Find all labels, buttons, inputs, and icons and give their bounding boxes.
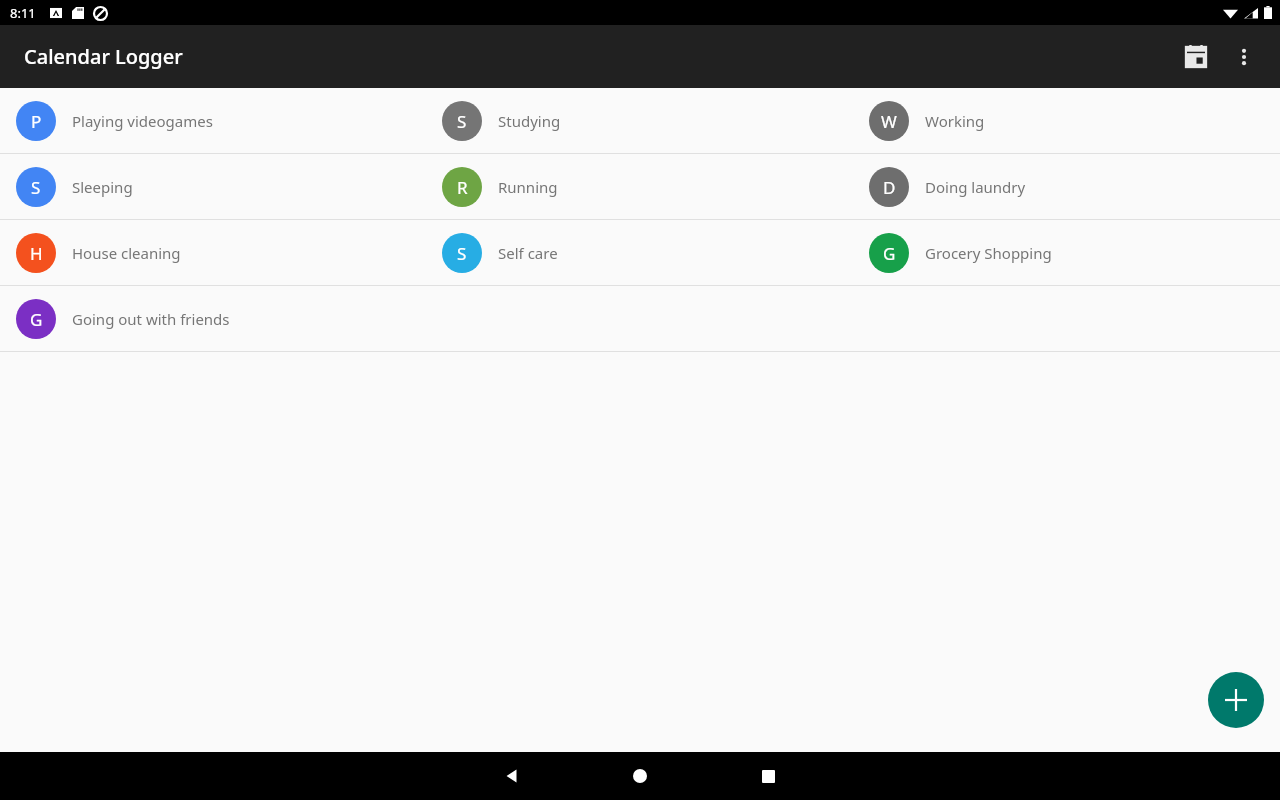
button[interactable]: G [0,286,426,351]
button[interactable]: More options [1220,33,1268,81]
staticText: G [883,242,896,265]
staticText: H [30,242,43,265]
staticText: R [457,176,468,199]
staticText: G [30,308,43,331]
staticText: 8:11 [10,4,36,22]
staticText: Calendar Logger [24,43,183,70]
staticText: P [31,110,42,133]
button[interactable]: R [426,154,853,219]
staticText: Running [498,177,558,197]
staticText: Studying [498,111,561,131]
staticText: Grocery Shopping [925,243,1052,263]
staticText: Self care [498,243,558,263]
staticText: House cleaning [72,243,181,263]
staticText: D [883,176,896,199]
staticText: Playing videogames [72,111,213,131]
button[interactable]: Back [488,752,536,800]
button[interactable]: Add activity [1208,672,1264,728]
staticText: Going out with friends [72,309,230,329]
staticText: S [31,176,41,199]
staticText: Doing laundry [925,177,1026,197]
button[interactable]: H [0,220,426,285]
staticText: Working [925,111,985,131]
button[interactable]: S [426,220,853,285]
button[interactable]: W [853,88,1280,153]
button[interactable]: Recent apps [744,752,792,800]
staticText: S [457,242,467,265]
button[interactable]: S [426,88,853,153]
button[interactable]: G [853,220,1280,285]
button[interactable]: P [0,88,426,153]
button[interactable]: S [0,154,426,219]
button[interactable]: Home [616,752,664,800]
button[interactable]: Open calendar [1172,33,1220,81]
staticText: Sleeping [72,177,133,197]
staticText: S [457,110,467,133]
button[interactable]: D [853,154,1280,219]
staticText: W [881,110,897,133]
